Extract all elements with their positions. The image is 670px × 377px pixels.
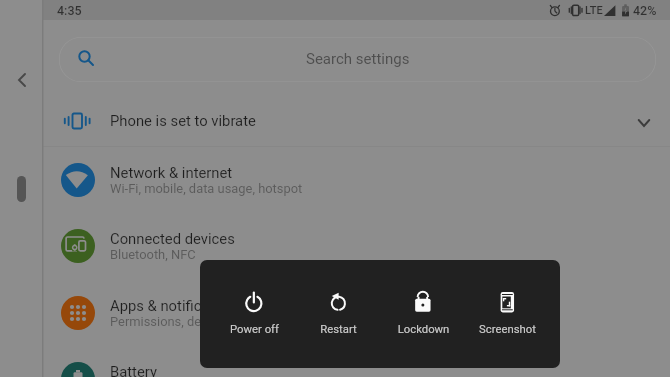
- staticText: LTE: [585, 4, 603, 17]
- staticText: Permissions, default apps: [110, 314, 259, 329]
- staticText: Screenshot: [465, 323, 550, 336]
- staticText: 42%: [633, 3, 657, 18]
- staticText: Lockdown: [381, 323, 466, 336]
- staticText: 4:35: [57, 3, 82, 18]
- staticText: Network & internet: [110, 164, 233, 181]
- button[interactable]: Lockdown: [381, 260, 466, 368]
- button[interactable]: Apps & notifications: [43, 280, 670, 347]
- button[interactable]: Restart: [296, 260, 381, 368]
- staticText: Connected devices: [110, 230, 235, 247]
- staticText: Phone is set to vibrate: [110, 112, 256, 129]
- button[interactable]: Network & internet: [43, 147, 670, 214]
- staticText: Bluetooth, NFC: [110, 247, 196, 262]
- staticText: Restart: [296, 323, 381, 336]
- button[interactable]: Battery: [43, 346, 670, 377]
- staticText: Wi-Fi, mobile, data usage, hotspot: [110, 181, 303, 196]
- staticText: Apps & notifications: [110, 297, 243, 314]
- button[interactable]: Phone is set to vibrate: [43, 95, 670, 147]
- button[interactable]: Connected devices: [43, 213, 670, 280]
- staticText: Search settings: [306, 50, 410, 68]
- button[interactable]: Search settings: [59, 37, 656, 82]
- button[interactable]: Power off: [212, 260, 297, 368]
- staticText: Power off: [212, 323, 297, 336]
- button[interactable]: Screenshot: [465, 260, 550, 368]
- staticText: Battery: [110, 363, 157, 377]
